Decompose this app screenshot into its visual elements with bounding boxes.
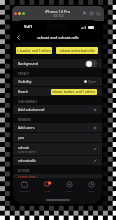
staticText: you	[18, 135, 25, 140]
button[interactable]: Background toggle	[85, 60, 97, 67]
staticText: 9:41	[24, 24, 33, 30]
button[interactable]: Add subchannel	[13, 105, 102, 114]
staticText: Feed	[66, 189, 72, 192]
button[interactable]: Reach	[13, 87, 102, 96]
button[interactable]: Toolbar action	[96, 11, 101, 16]
button[interactable]: Add	[93, 108, 97, 112]
button[interactable]: sshoat	[13, 143, 102, 155]
staticText: current admin	[18, 150, 36, 154]
button[interactable]: Background	[13, 59, 102, 68]
staticText: SUBCHANNELS	[18, 100, 38, 104]
button[interactable]: sshoatcalb	[13, 156, 102, 165]
button[interactable]: Edit	[93, 159, 97, 163]
button[interactable]: t, bucket, and 7 others	[16, 47, 52, 54]
staticText: sshoat, bucket, and 7 others	[52, 90, 96, 94]
staticText: Reach	[18, 89, 28, 94]
button[interactable]: you	[13, 133, 102, 142]
staticText: iPhone 14 Pro	[45, 9, 71, 14]
staticText: t, bucket, and 7 others	[17, 49, 52, 53]
staticText: ACTIONS	[18, 169, 30, 173]
staticText: Leave chat...	[18, 174, 39, 178]
button[interactable]: Add users	[13, 123, 102, 132]
button[interactable]: Toolbar action	[82, 11, 87, 16]
button[interactable]: Chat	[36, 178, 58, 197]
button[interactable]: Leave chat...	[13, 174, 102, 178]
staticText: MEMBERS	[18, 118, 31, 122]
staticText: sshoat	[18, 145, 29, 150]
staticText: PRIVACY	[18, 72, 29, 76]
staticText: sshoat and sshoat.mlb	[60, 49, 95, 53]
button[interactable]: Visibility	[13, 77, 102, 86]
button[interactable]: Apps	[80, 178, 102, 197]
staticText: Background	[18, 61, 38, 66]
button[interactable]: Calendar	[13, 178, 36, 197]
staticText: iOS 16.2	[53, 14, 64, 18]
staticText: Add users	[18, 125, 35, 130]
button[interactable]: Toolbar action	[89, 11, 94, 16]
staticText: Add subchannel	[18, 107, 45, 112]
button[interactable]: Edit	[93, 147, 97, 151]
staticText: sshoat and sshoat.mlb	[37, 35, 79, 40]
staticText: Calendar	[19, 189, 30, 192]
button[interactable]: Feed	[58, 178, 80, 197]
button[interactable]: Back	[13, 32, 23, 42]
staticText: sshoatcalb	[18, 158, 36, 163]
staticText: Apps	[88, 189, 94, 192]
staticText: Chat	[44, 189, 50, 192]
button[interactable]: sshoat and sshoat.mlb	[56, 47, 98, 54]
button[interactable]: Add	[93, 126, 97, 130]
staticText: Visibility	[18, 79, 32, 84]
staticText: Open	[88, 80, 97, 84]
